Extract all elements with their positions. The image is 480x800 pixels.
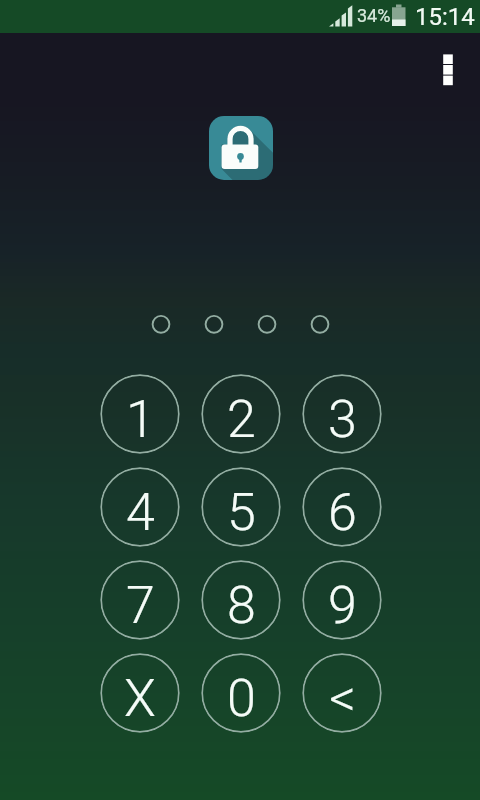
staticText: X [124, 668, 156, 729]
button[interactable]: Key 2 [201, 374, 281, 454]
button[interactable]: Key 1 [100, 374, 180, 454]
button[interactable]: Key 3 [302, 374, 382, 454]
staticText: 0 [227, 668, 256, 729]
staticText: 7 [126, 575, 155, 636]
staticText: 15:14 [415, 3, 475, 31]
button[interactable]: Key 5 [201, 467, 281, 547]
staticText: 9 [328, 575, 357, 636]
button[interactable]: Key 8 [201, 560, 281, 640]
button[interactable]: Key X [100, 653, 180, 733]
staticText: 1 [126, 389, 155, 450]
staticText: 2 [227, 389, 256, 450]
button[interactable]: More options [427, 50, 469, 92]
staticText: 6 [328, 482, 357, 543]
button[interactable]: Key 4 [100, 467, 180, 547]
button[interactable]: Key 0 [201, 653, 281, 733]
staticText: < [329, 668, 356, 729]
staticText: 4 [126, 482, 155, 543]
button[interactable]: Key < [302, 653, 382, 733]
button[interactable]: Key 6 [302, 467, 382, 547]
staticText: 8 [227, 575, 256, 636]
staticText: 5 [227, 482, 256, 543]
button[interactable]: Key 9 [302, 560, 382, 640]
button[interactable]: Key 7 [100, 560, 180, 640]
staticText: 34% [357, 5, 391, 26]
button[interactable]: App lock [209, 116, 273, 180]
staticText: 3 [328, 389, 357, 450]
